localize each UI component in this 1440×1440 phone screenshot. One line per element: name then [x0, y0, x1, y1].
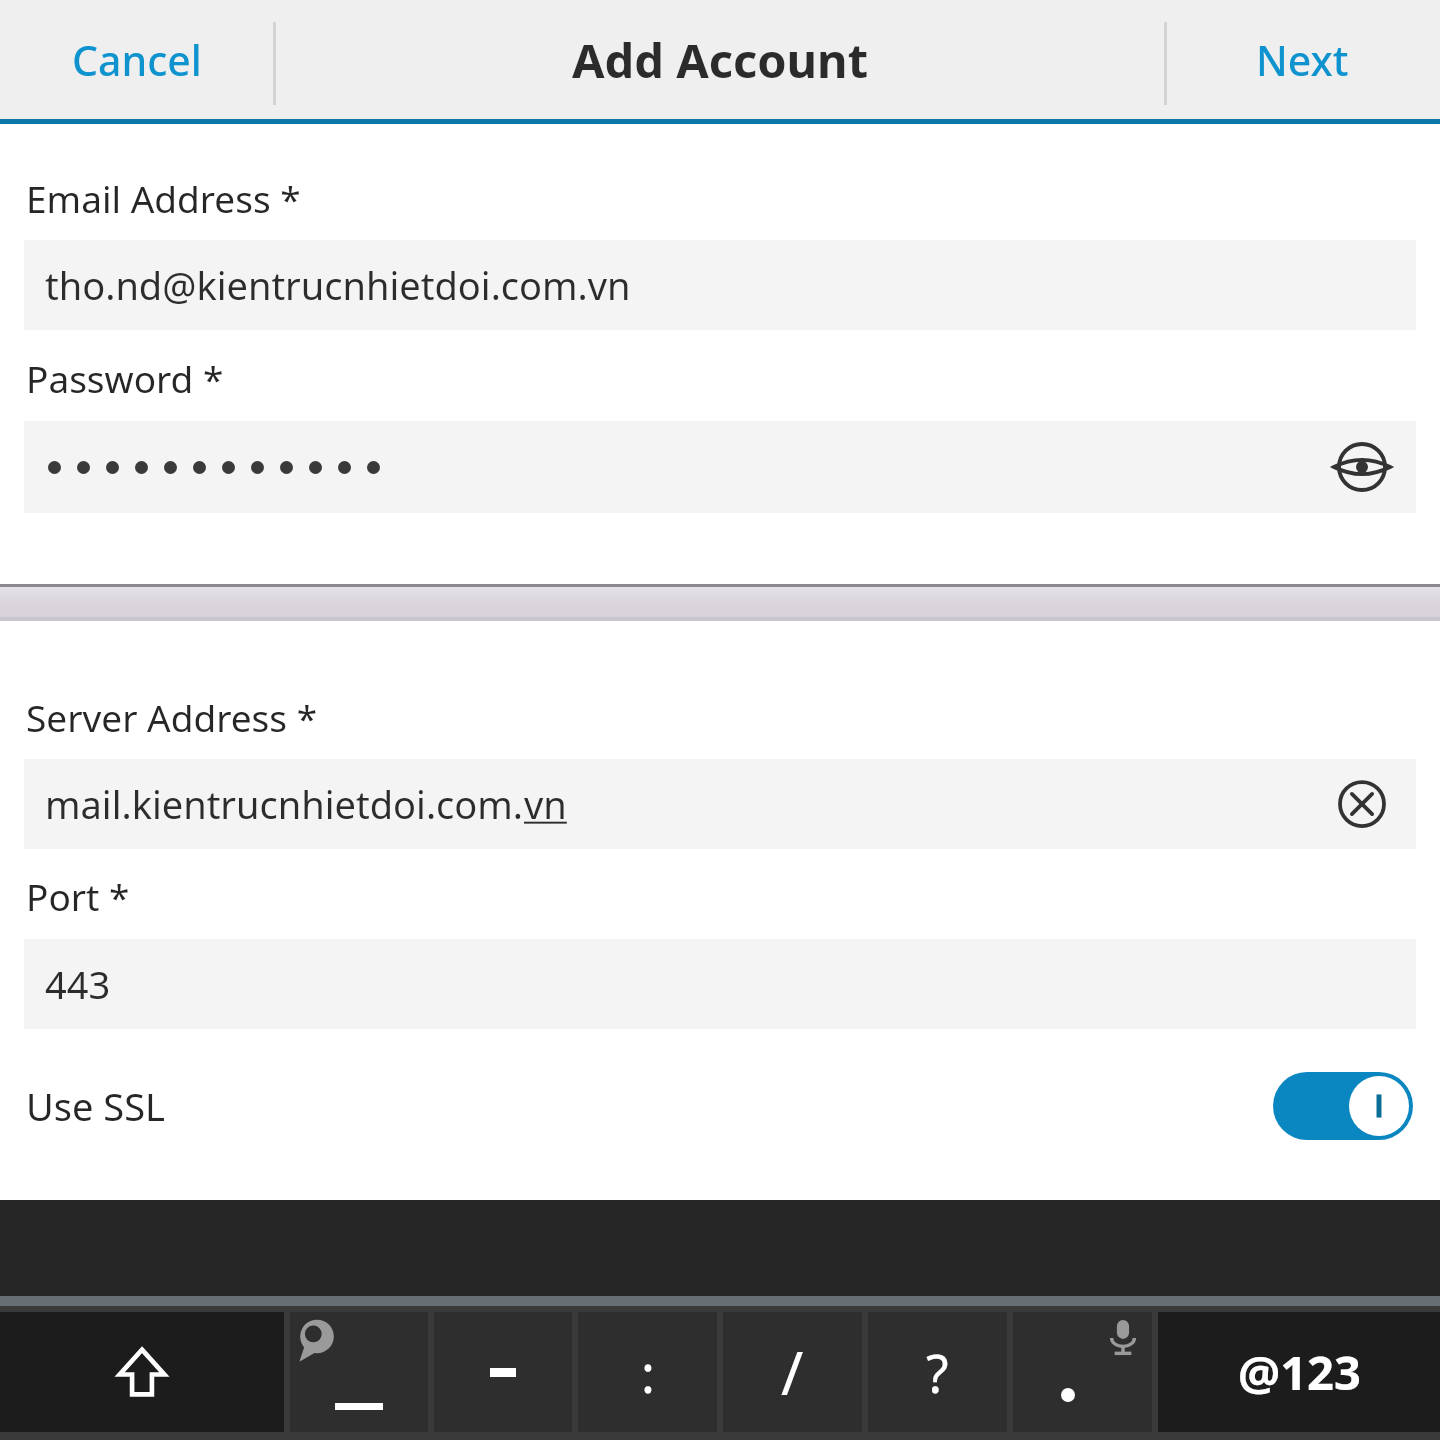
staticText: 443 [45, 958, 111, 1010]
staticText: Server Address * [26, 692, 318, 742]
staticText: @123 [1238, 1340, 1361, 1404]
staticText: Add Account [572, 28, 869, 92]
staticText: Cancel [72, 32, 202, 88]
staticText: ? [926, 1337, 949, 1408]
button[interactable]: Use SSL [0, 1051, 1440, 1161]
button[interactable]: Question mark [868, 1312, 1007, 1432]
button[interactable]: Period, voice input [1013, 1312, 1152, 1432]
button[interactable]: 443 [24, 939, 1416, 1029]
button[interactable]: mail.kientrucnhietdoi.com. [24, 759, 1416, 849]
staticText: Port * [26, 871, 130, 921]
staticText: vn [524, 778, 567, 830]
staticText: tho.nd@kientrucnhietdoi.com.vn [45, 259, 631, 311]
staticText: Next [1256, 32, 1349, 88]
staticText: mail.kientrucnhietdoi.com. [45, 778, 524, 830]
staticText: Password * [26, 353, 224, 403]
button[interactable]: Show password [1334, 439, 1390, 495]
button[interactable]: Colon [578, 1312, 717, 1432]
button[interactable]: Language, underscore [290, 1312, 428, 1432]
button[interactable]: Shift [0, 1312, 284, 1432]
button[interactable]: Cancel [0, 0, 273, 119]
button[interactable]: Hyphen [434, 1312, 572, 1432]
button[interactable]: Slash [723, 1312, 862, 1432]
staticText: Use SSL [26, 1080, 165, 1132]
button[interactable]: Show password [24, 421, 1416, 513]
button[interactable]: Symbols [1158, 1312, 1440, 1432]
button[interactable]: Use SSL toggle, on [1273, 1072, 1413, 1140]
staticText: : [641, 1337, 655, 1408]
staticText: / [781, 1331, 804, 1413]
staticText: Email Address * [26, 173, 301, 223]
button[interactable]: Next [1164, 0, 1440, 119]
button[interactable]: tho.nd@kientrucnhietdoi.com.vn [24, 240, 1416, 330]
button[interactable]: Clear text [1334, 776, 1390, 832]
